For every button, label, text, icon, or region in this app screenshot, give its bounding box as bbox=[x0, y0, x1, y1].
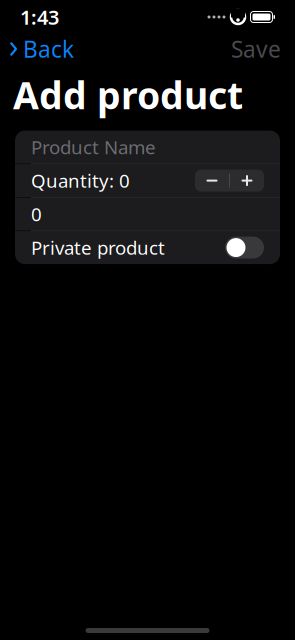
staticText: 1:43 bbox=[20, 4, 59, 30]
staticText: Add product bbox=[13, 70, 243, 120]
button[interactable]: Private product bbox=[225, 237, 264, 259]
staticText: 0 bbox=[31, 202, 42, 226]
staticText: Product Name bbox=[31, 135, 156, 159]
button[interactable]: Decrease quantity bbox=[195, 170, 229, 192]
button[interactable]: Save bbox=[231, 28, 295, 70]
button[interactable]: Back bbox=[0, 28, 74, 70]
button[interactable]: Increase quantity bbox=[230, 170, 264, 192]
staticText: Save bbox=[231, 34, 281, 64]
staticText: Quantity: 0 bbox=[31, 168, 130, 193]
staticText: Back bbox=[23, 34, 74, 64]
staticText: Private product bbox=[31, 235, 165, 260]
